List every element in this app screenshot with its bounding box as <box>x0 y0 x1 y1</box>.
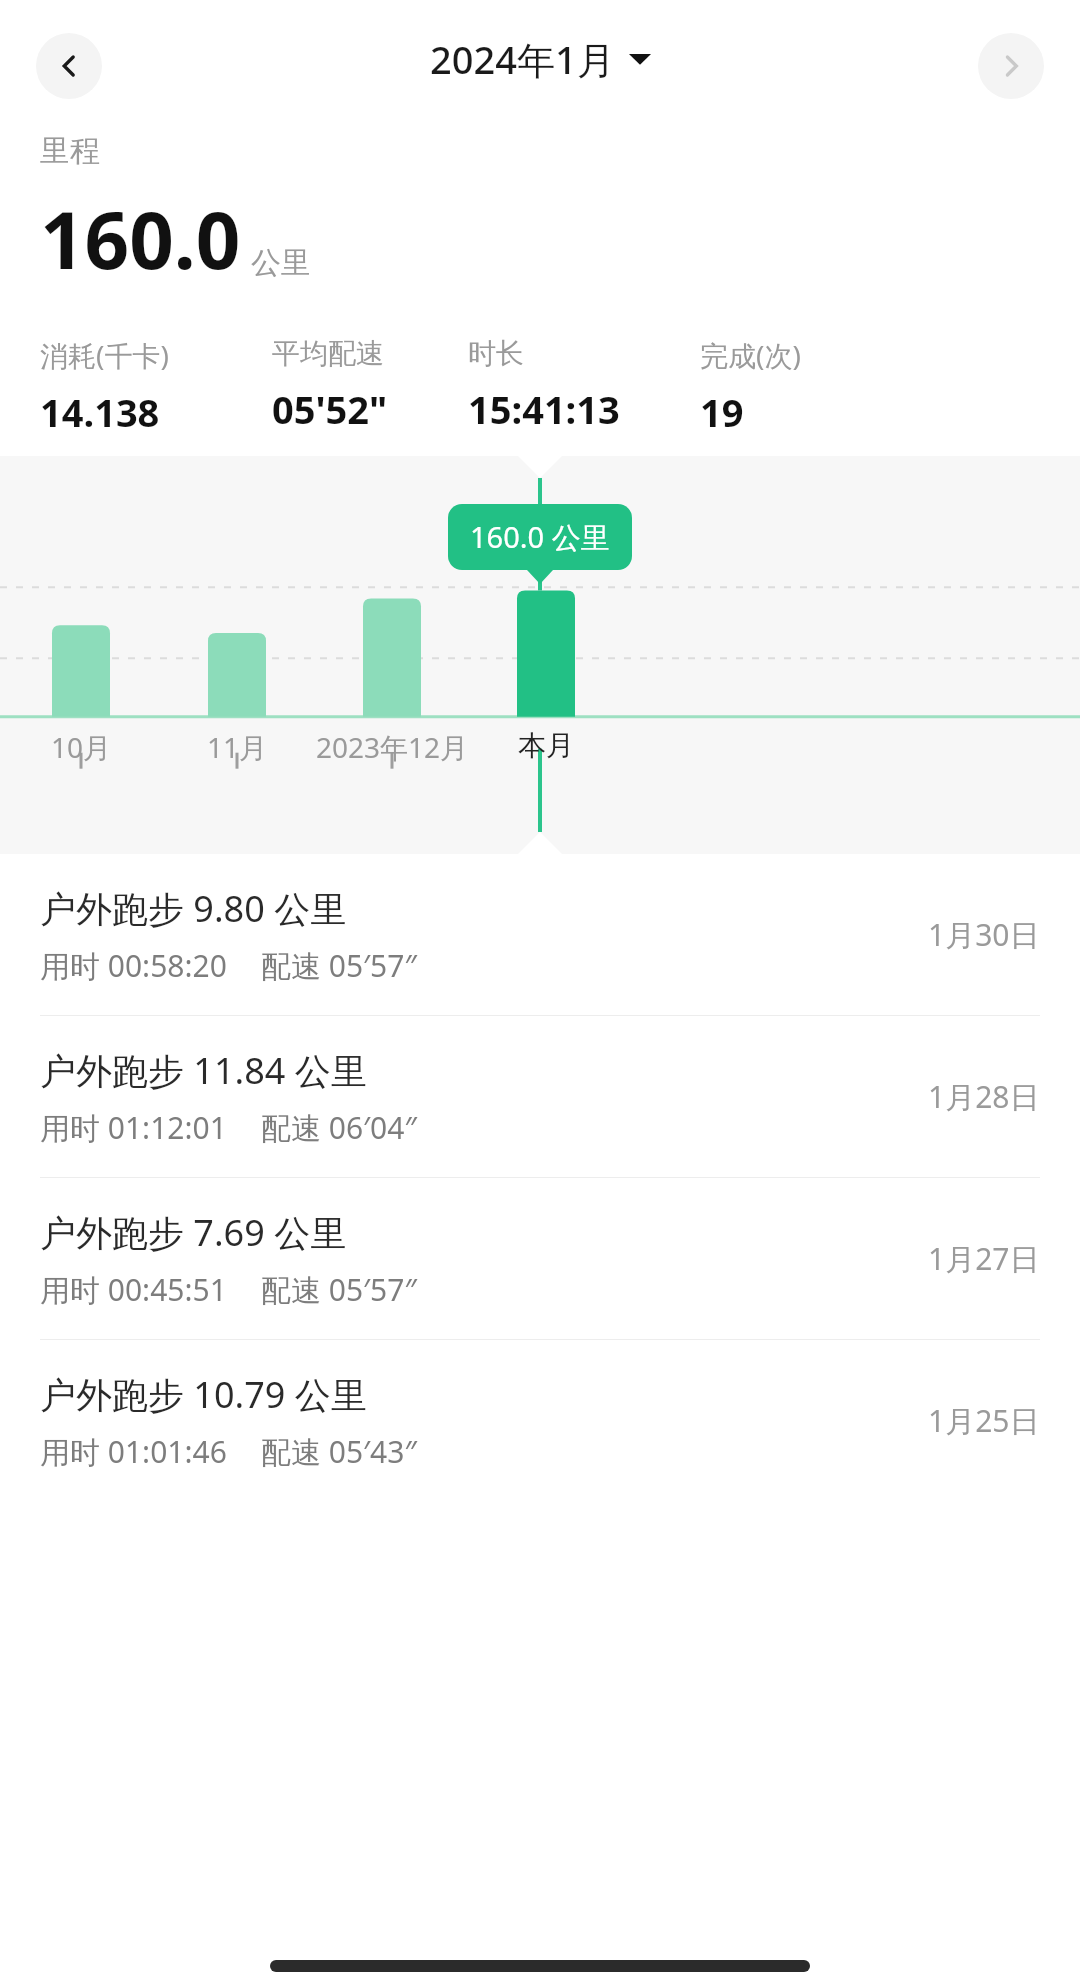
staticText: 时长 <box>468 336 524 371</box>
button[interactable]: 户外跑步 9.80 公里 <box>0 854 1080 1015</box>
staticText: 用时 01:01:46 <box>40 1431 227 1472</box>
staticText: 户外跑步 9.80 公里 <box>40 884 347 933</box>
staticText: 2023年12月 <box>302 728 482 766</box>
staticText: 2024年1月 <box>430 33 615 85</box>
staticText: 配速 05′43″ <box>261 1431 417 1472</box>
staticText: 1月25日 <box>928 1400 1040 1441</box>
button[interactable]: 户外跑步 11.84 公里 <box>0 1016 1080 1177</box>
staticText: 10月 <box>0 728 171 766</box>
staticText: 户外跑步 11.84 公里 <box>40 1046 367 1095</box>
staticText: 平均配速 <box>272 336 384 371</box>
staticText: 配速 05′57″ <box>261 945 417 986</box>
staticText: 用时 00:45:51 <box>40 1269 227 1310</box>
staticText: 本月 <box>456 728 636 763</box>
staticText: 1月30日 <box>928 914 1040 955</box>
staticText: 05'52" <box>272 383 388 435</box>
staticText: 配速 06′04″ <box>261 1107 417 1148</box>
staticText: 户外跑步 7.69 公里 <box>40 1208 347 1257</box>
staticText: 消耗(千卡) <box>40 336 169 374</box>
staticText: 160.0 <box>40 186 241 292</box>
button[interactable]: Next month <box>978 33 1044 99</box>
staticText: 15:41:13 <box>468 383 620 435</box>
staticText: 1月28日 <box>928 1076 1040 1117</box>
staticText: 19 <box>700 386 744 436</box>
button[interactable]: 2024年1月 <box>430 33 651 85</box>
staticText: 配速 05′57″ <box>261 1269 417 1310</box>
staticText: 用时 00:58:20 <box>40 945 227 986</box>
staticText: 里程 <box>40 132 100 170</box>
staticText: 公里 <box>251 244 311 282</box>
button[interactable]: 户外跑步 10.79 公里 <box>0 1340 1080 1501</box>
staticText: 户外跑步 10.79 公里 <box>40 1370 367 1419</box>
button[interactable]: 户外跑步 7.69 公里 <box>0 1178 1080 1339</box>
staticText: 1月27日 <box>928 1238 1040 1279</box>
staticText: 完成(次) <box>700 336 801 374</box>
button[interactable]: Back <box>36 33 102 99</box>
staticText: 14.138 <box>40 386 160 436</box>
staticText: 11月 <box>147 728 327 766</box>
staticText: 160.0 公里 <box>470 517 610 557</box>
staticText: 用时 01:12:01 <box>40 1107 227 1148</box>
